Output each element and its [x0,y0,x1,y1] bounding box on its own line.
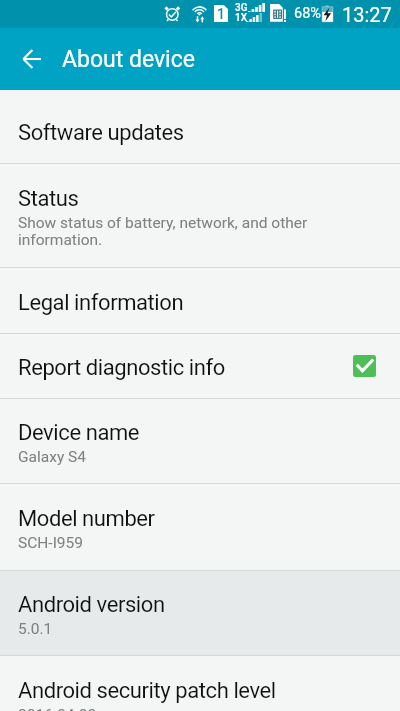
staticText: Show status of battery, network, and oth… [18,214,308,249]
staticText: Software updates [18,120,184,146]
staticText: Android security patch level [18,678,276,704]
staticText: 1 [217,6,225,22]
button[interactable]: Android version [0,571,400,655]
button[interactable]: Model number [0,484,400,570]
staticText: Status [18,186,79,212]
staticText: Model number [18,506,155,532]
staticText: 13:27 [342,3,392,26]
staticText: 2016-04-02 [18,706,97,711]
staticText: 68% [294,5,321,22]
button[interactable]: Navigate up [8,28,55,90]
button[interactable]: Android security patch level [0,656,400,711]
staticText: Device name [18,420,140,446]
staticText: Galaxy S4 [18,448,86,466]
button[interactable]: Status [0,164,400,267]
staticText: 1X [235,12,248,24]
button[interactable]: Device name [0,399,400,483]
staticText: Report diagnostic info [18,355,225,381]
staticText: Legal information [18,290,184,316]
button[interactable]: Report diagnostic info checkbox, checked [353,355,376,377]
staticText: SCH-I959 [18,534,83,552]
staticText: 3G [235,2,248,14]
button[interactable]: Software updates [0,98,400,163]
staticText: 5.0.1 [18,620,53,638]
button[interactable]: Report diagnostic info [0,334,400,398]
staticText: Android version [18,592,165,618]
staticText: About device [62,46,195,73]
button[interactable]: Legal information [0,268,400,333]
